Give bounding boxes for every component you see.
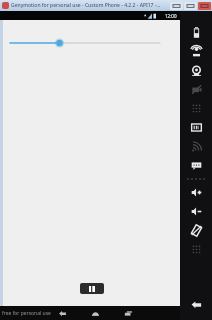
button[interactable]: Recents — [122, 307, 135, 320]
button[interactable]: Window button — [170, 2, 183, 10]
button[interactable]: Slider — [10, 36, 160, 50]
button[interactable]: Pixel perfect — [183, 99, 209, 118]
button[interactable]: GPS — [183, 42, 209, 61]
button[interactable]: Camera disabled — [183, 80, 209, 99]
button[interactable]: Identifiers — [183, 118, 209, 137]
button[interactable]: Network — [183, 137, 209, 156]
button[interactable]: Messages — [183, 156, 209, 175]
button[interactable]: Volume down — [183, 202, 209, 221]
button[interactable]: More — [183, 240, 209, 259]
button[interactable]: Home — [89, 307, 102, 320]
staticText: 12:00 — [165, 13, 177, 19]
button[interactable]: Camera — [183, 61, 209, 80]
button[interactable]: Window button — [184, 2, 197, 10]
button[interactable]: Battery — [183, 23, 209, 42]
button[interactable]: Rotate — [183, 221, 209, 240]
button[interactable]: Volume up — [183, 183, 209, 202]
staticText: free for personal use — [2, 310, 51, 317]
button[interactable]: Window button — [198, 2, 211, 10]
button[interactable]: Back — [56, 307, 69, 320]
button[interactable]: Back — [183, 295, 209, 314]
staticText: Genymotion for personal use - Custom Pho… — [11, 2, 170, 9]
button[interactable]: Toast — [80, 283, 104, 294]
button[interactable]: Genymotion — [2, 2, 9, 9]
